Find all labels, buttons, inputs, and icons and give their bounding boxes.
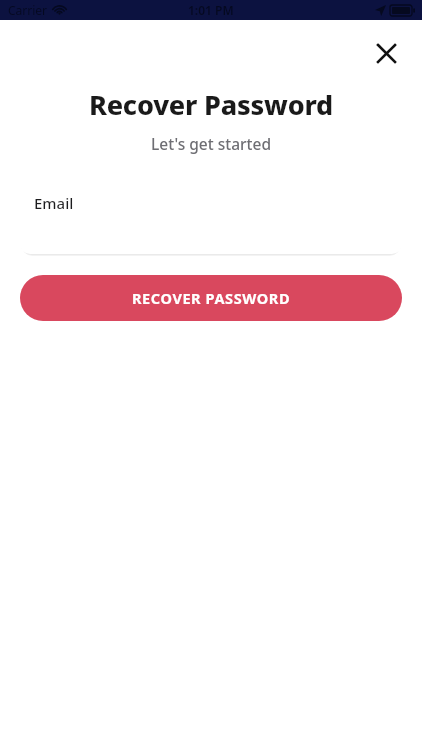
button[interactable]: Email bbox=[20, 178, 402, 254]
staticText: Recover Password bbox=[0, 86, 422, 123]
button[interactable]: Close bbox=[369, 36, 403, 70]
button[interactable]: RECOVER PASSWORD bbox=[20, 275, 402, 321]
staticText: Carrier bbox=[8, 2, 48, 18]
staticText: 1:01 PM bbox=[188, 2, 234, 18]
staticText: RECOVER PASSWORD bbox=[132, 288, 291, 308]
staticText: Email bbox=[34, 193, 74, 213]
staticText: Let's get started bbox=[0, 133, 422, 154]
